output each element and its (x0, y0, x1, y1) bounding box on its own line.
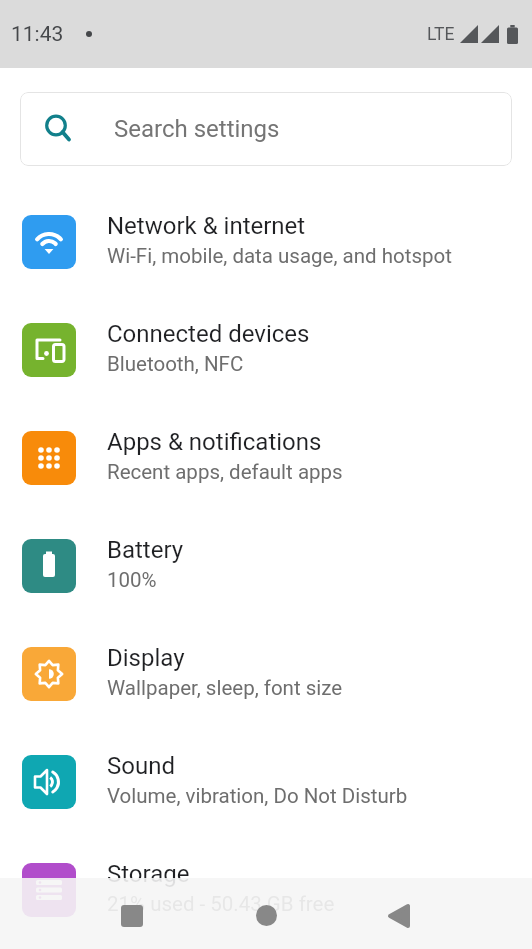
staticText: 100% (107, 568, 157, 592)
button[interactable] (375, 880, 423, 949)
staticText: Volume, vibration, Do Not Disturb (107, 784, 408, 808)
staticText: 11:43 (11, 22, 64, 47)
staticText: Storage (107, 860, 190, 888)
button[interactable]: Apps & notifications (0, 404, 532, 512)
staticText: Battery (107, 536, 184, 564)
button[interactable]: Network & internet (0, 188, 532, 296)
staticText: Recent apps, default apps (107, 460, 343, 484)
button[interactable] (242, 880, 290, 949)
button[interactable]: Display (0, 620, 532, 728)
button[interactable] (108, 880, 156, 949)
staticText: LTE (427, 24, 455, 45)
staticText: Connected devices (107, 320, 310, 348)
button[interactable]: Connected devices (0, 296, 532, 404)
staticText: 21% used - 50.43 GB free (107, 892, 335, 916)
staticText: Apps & notifications (107, 428, 322, 456)
button[interactable]: Storage (0, 836, 532, 944)
staticText: Wallpaper, sleep, font size (107, 676, 343, 700)
button[interactable]: Search settings (20, 92, 512, 166)
staticText: Network & internet (107, 212, 306, 240)
staticText: Wi-Fi, mobile, data usage, and hotspot (107, 244, 452, 268)
staticText: Search settings (114, 115, 280, 143)
button[interactable]: Sound (0, 728, 532, 836)
staticText: Sound (107, 752, 175, 780)
staticText: Bluetooth, NFC (107, 352, 244, 376)
button[interactable]: Battery (0, 512, 532, 620)
staticText: Display (107, 644, 185, 672)
